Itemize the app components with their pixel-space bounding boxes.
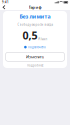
staticText: 0,5 [23,28,38,42]
staticText: Подключено [28,45,46,49]
staticText: Подробнее [27,64,43,67]
staticText: Без лимита [19,13,50,20]
button[interactable]: Изменить [5,52,64,61]
staticText: Изменить [26,54,44,59]
staticText: 9:41 [2,0,9,4]
button[interactable]: Подробнее [27,62,43,69]
button[interactable]: Подключено [24,45,46,50]
staticText: ₽/мин [38,37,47,41]
button[interactable]: Back [0,5,6,10]
staticText: Cвободу скорости всегда [17,23,52,26]
staticText: Тариф [28,5,41,10]
